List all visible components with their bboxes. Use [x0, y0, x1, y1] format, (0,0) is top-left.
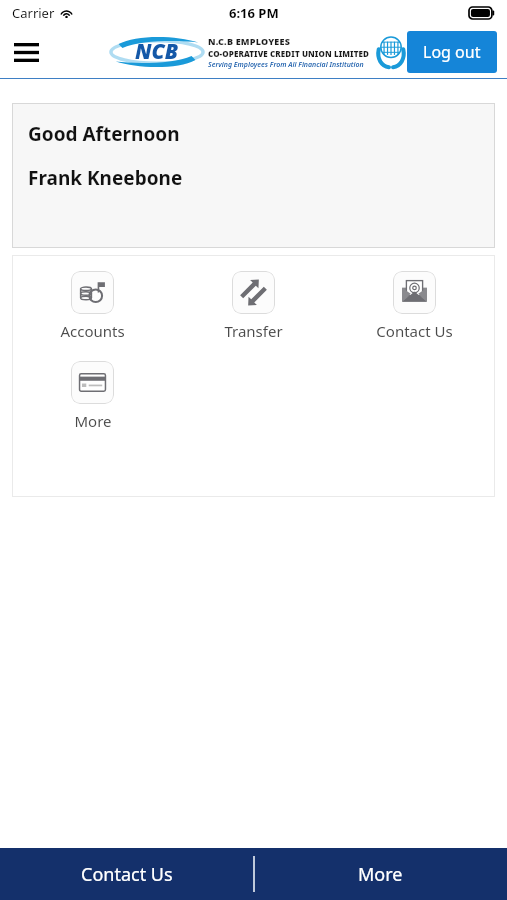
staticText: Log out	[423, 41, 481, 63]
staticText: Accounts	[60, 321, 125, 341]
button[interactable]: More	[253, 848, 507, 900]
button[interactable]: Contact Us	[0, 848, 253, 900]
staticText: More	[74, 411, 112, 431]
button[interactable]: Good Afternoon	[12, 103, 495, 248]
staticText: Serving Employees From All Financial Ins…	[208, 60, 364, 70]
staticText: Good Afternoon	[28, 121, 180, 147]
staticText: Transfer	[224, 321, 283, 341]
staticText: CO-OPERATIVE CREDIT UNION LIMITED	[208, 48, 370, 59]
staticText: More	[358, 862, 403, 887]
staticText: N.C.B EMPLOYEES	[208, 35, 291, 47]
button[interactable]: Transfer	[173, 269, 334, 343]
button[interactable]: More	[12, 359, 173, 433]
button[interactable]: Menu	[8, 34, 44, 70]
staticText: 6:16 PM	[229, 4, 279, 22]
button[interactable]: Contact Us	[334, 269, 495, 343]
staticText: Frank Kneebone	[28, 165, 183, 191]
staticText: Carrier	[12, 4, 55, 22]
staticText: Contact Us	[376, 321, 453, 341]
staticText: Contact Us	[81, 862, 173, 887]
staticText: NCB	[135, 37, 179, 66]
button[interactable]: Log out	[407, 31, 497, 73]
button[interactable]: Accounts	[12, 269, 173, 343]
